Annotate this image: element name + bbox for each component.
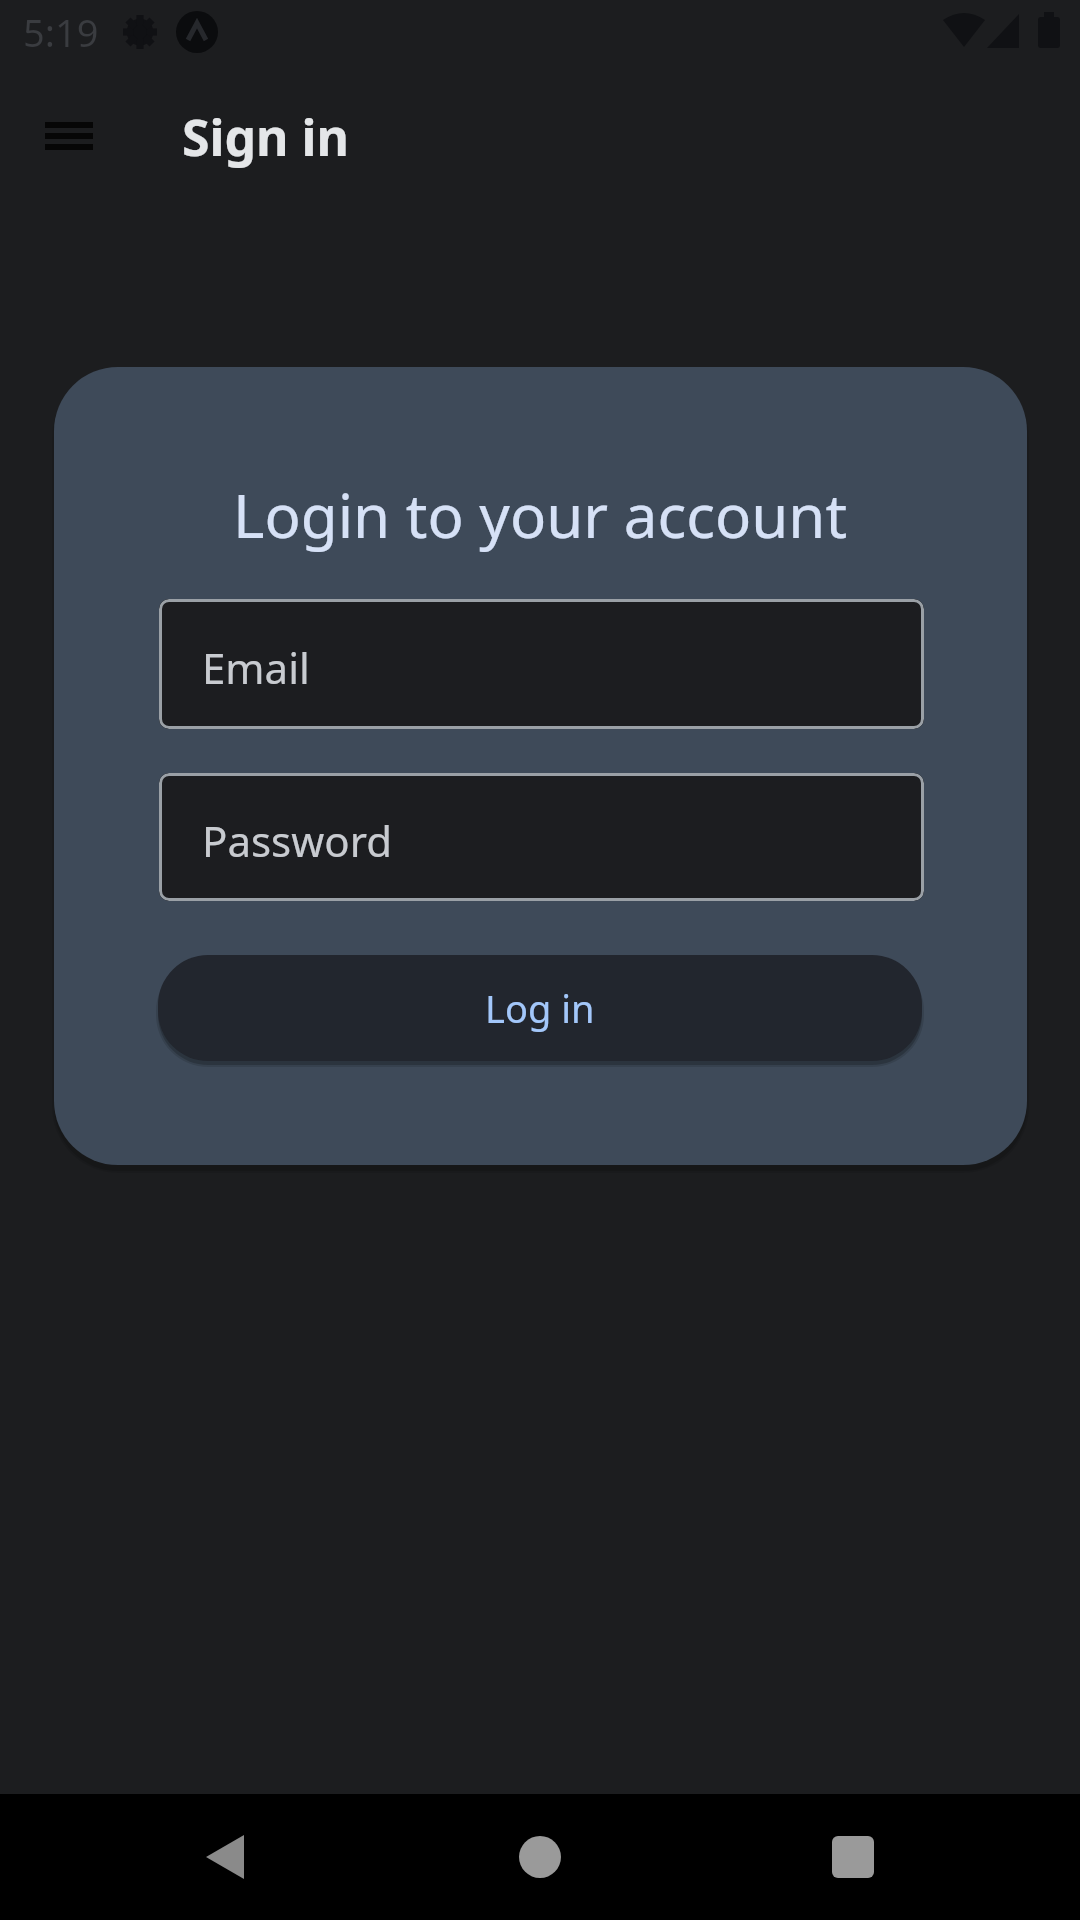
button[interactable] (165, 1794, 285, 1920)
button[interactable] (29, 104, 109, 168)
staticText: Password (202, 812, 392, 869)
staticText: 5:19 (23, 6, 99, 58)
staticText: Sign in (182, 103, 350, 171)
button[interactable]: Email (159, 599, 924, 729)
staticText: Email (202, 639, 310, 696)
button[interactable]: Password (159, 773, 924, 901)
staticText: Login to your account (233, 474, 848, 554)
button[interactable] (480, 1794, 600, 1920)
button[interactable]: Log in (158, 955, 922, 1061)
button[interactable] (793, 1794, 913, 1920)
staticText: Log in (485, 982, 595, 1034)
